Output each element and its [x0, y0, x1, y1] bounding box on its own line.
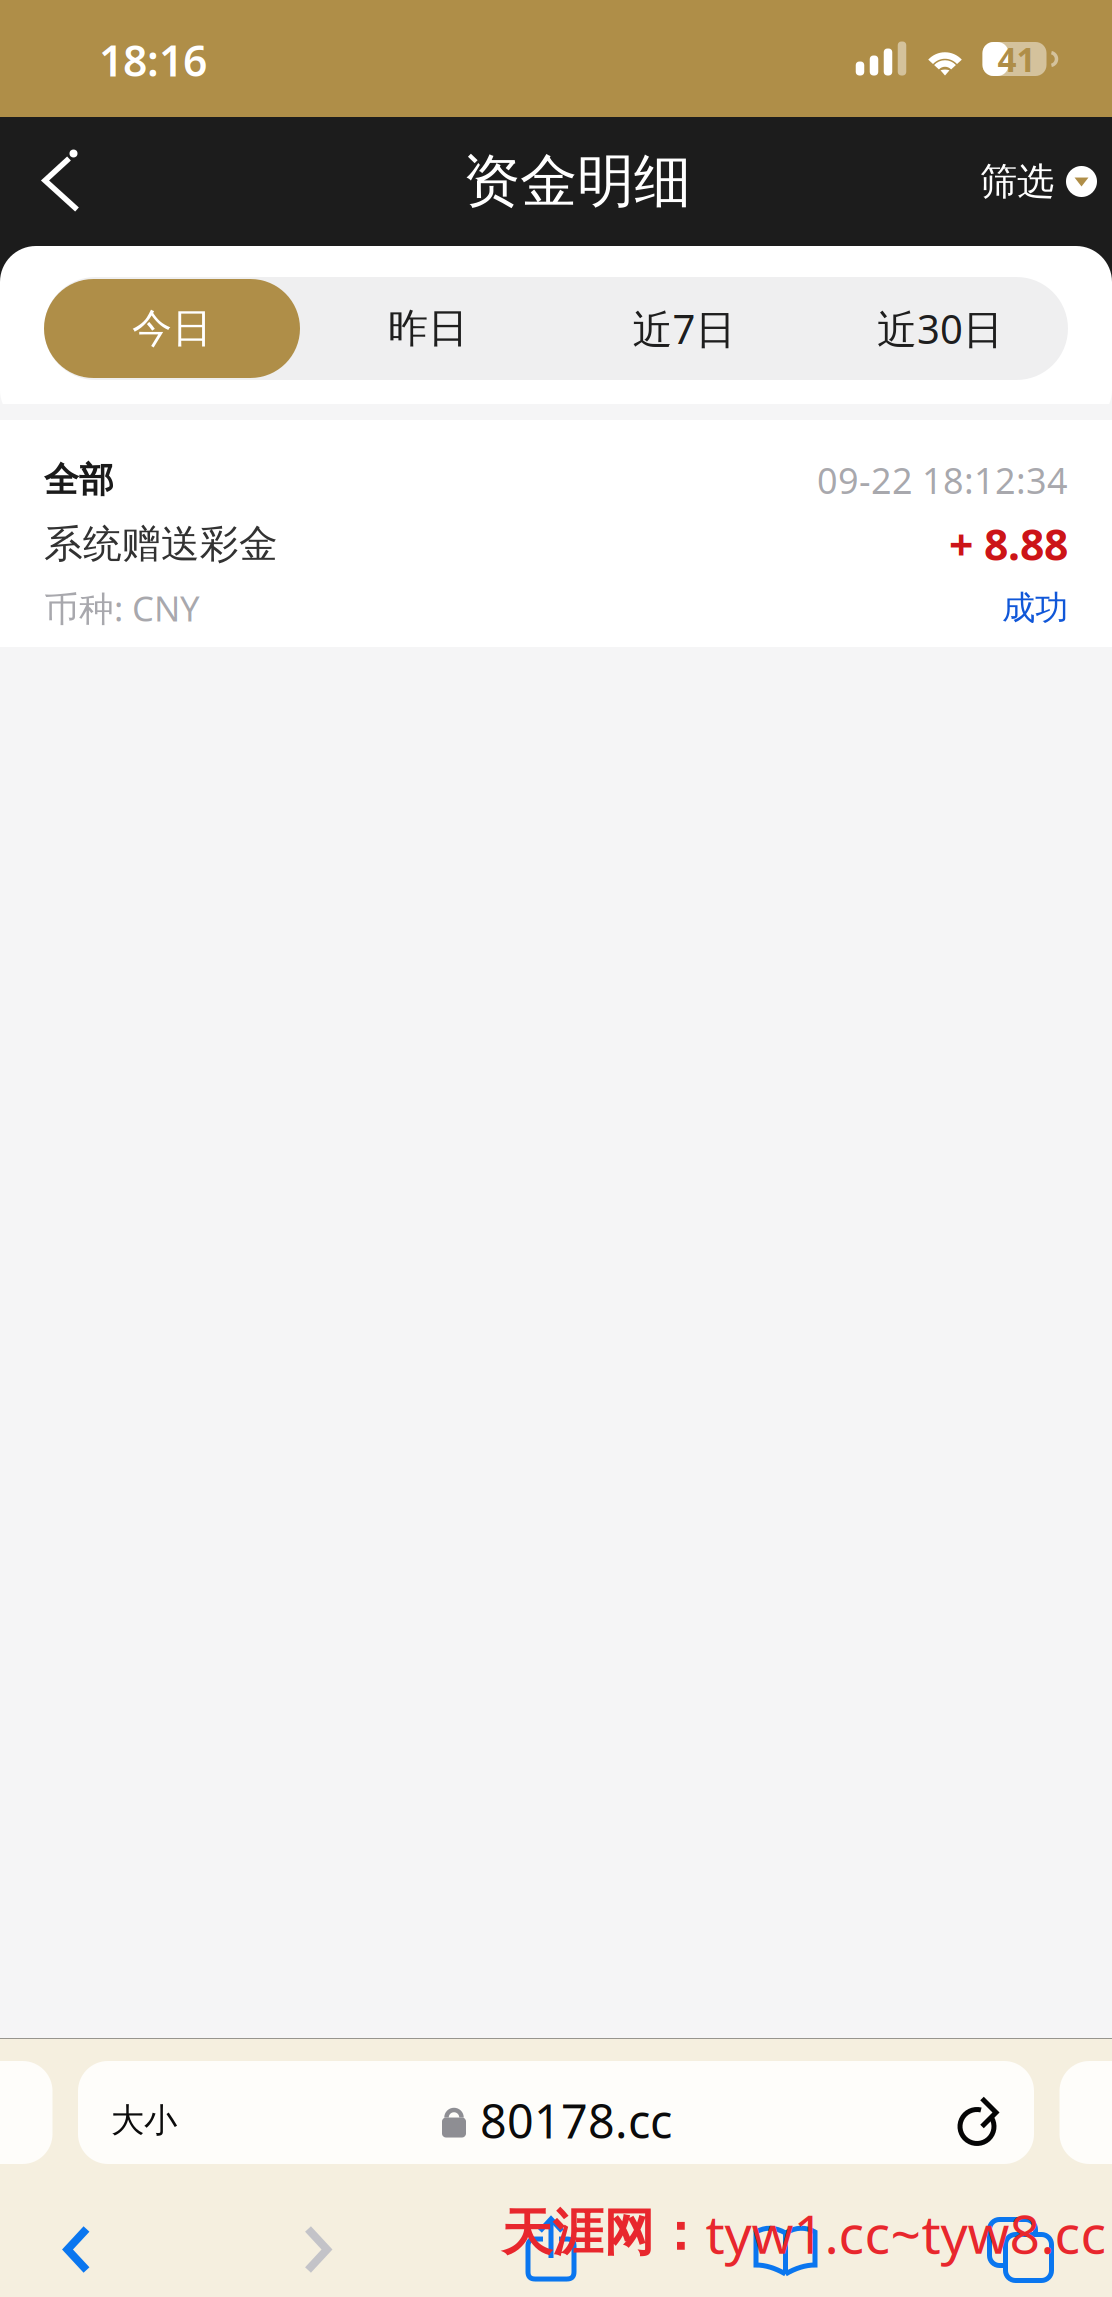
staticText: 资金明细: [463, 146, 691, 217]
button[interactable]: 近7日: [556, 277, 812, 380]
staticText: 天涯网：: [501, 2202, 705, 2264]
button[interactable]: Tabs: [979, 2209, 1061, 2290]
button[interactable]: 全部: [0, 420, 1112, 647]
staticText: 41: [997, 37, 1035, 81]
button[interactable]: 筛选: [980, 133, 1112, 230]
button[interactable]: Forward: [291, 2213, 344, 2286]
staticText: 近30日: [877, 302, 1003, 355]
staticText: 系统赠送彩金: [44, 520, 278, 568]
button[interactable]: 昨日: [300, 277, 556, 380]
button[interactable]: 大小: [78, 2061, 1034, 2164]
staticText: + 8.88: [949, 516, 1068, 572]
staticText: tyw1.cc~tyw8.cc: [705, 2198, 1106, 2268]
staticText: 18:16: [99, 32, 207, 88]
button[interactable]: Bookmarks: [743, 2212, 828, 2287]
staticText: 筛选: [980, 159, 1054, 204]
staticText: 成功: [1002, 587, 1068, 628]
staticText: 今日: [132, 304, 212, 353]
staticText: 80178.cc: [480, 2089, 672, 2151]
staticText: 币种: CNY: [44, 585, 200, 631]
button[interactable]: 近30日: [812, 277, 1068, 380]
button[interactable]: Share: [515, 2205, 587, 2291]
button[interactable]: Back: [50, 2213, 103, 2286]
staticText: 全部: [44, 459, 114, 501]
staticText: 近7日: [632, 302, 735, 355]
button[interactable]: 今日: [44, 277, 300, 380]
staticText: 09-22 18:12:34: [817, 456, 1068, 504]
staticText: 昨日: [388, 304, 468, 353]
staticText: 大小: [111, 2100, 177, 2141]
button[interactable]: Back: [0, 125, 117, 237]
